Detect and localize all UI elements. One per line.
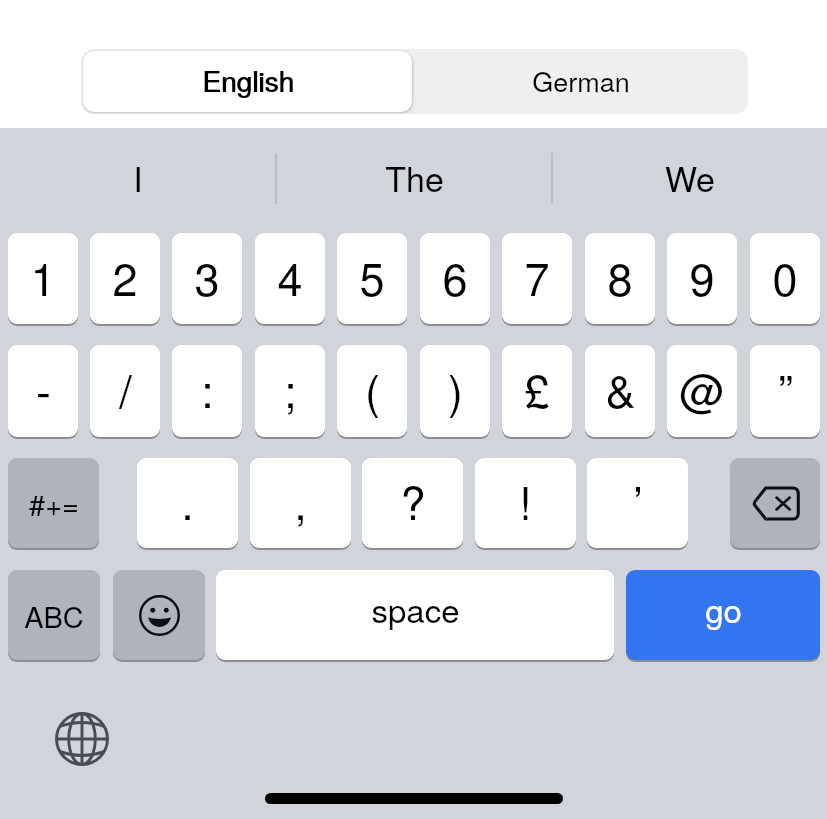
button[interactable]: , xyxy=(250,458,351,548)
button[interactable]: @ xyxy=(667,345,737,437)
staticText: 7 xyxy=(524,244,550,308)
button[interactable]: ’ xyxy=(587,458,688,548)
button[interactable]: #+= xyxy=(8,458,99,548)
staticText: 8 xyxy=(607,244,633,308)
button[interactable]: / xyxy=(90,345,160,437)
staticText: : xyxy=(201,356,214,420)
staticText: ’ xyxy=(633,468,643,532)
button[interactable]: 2 xyxy=(90,233,160,324)
button[interactable]: 3 xyxy=(172,233,242,324)
button[interactable]: space xyxy=(216,570,614,660)
staticText: 6 xyxy=(442,244,468,308)
staticText: 9 xyxy=(689,244,715,308)
staticText: 4 xyxy=(277,244,303,308)
button[interactable]: German xyxy=(414,49,748,114)
staticText: @ xyxy=(679,356,725,420)
staticText: 2 xyxy=(112,244,138,308)
button[interactable]: 0 xyxy=(750,233,820,324)
staticText: & xyxy=(605,356,636,420)
staticText: We xyxy=(665,153,715,202)
button[interactable]: Change keyboard language xyxy=(51,708,113,770)
button[interactable]: ( xyxy=(337,345,407,437)
button[interactable]: I xyxy=(0,128,275,218)
button[interactable]: 7 xyxy=(502,233,572,324)
staticText: 0 xyxy=(772,244,798,308)
button[interactable]: ! xyxy=(475,458,576,548)
button[interactable]: ABC xyxy=(8,570,100,660)
staticText: ” xyxy=(778,356,793,420)
button[interactable]: 9 xyxy=(667,233,737,324)
button[interactable]: ” xyxy=(750,345,820,437)
button[interactable]: go xyxy=(626,570,820,660)
staticText: ? xyxy=(400,468,426,532)
button[interactable]: English xyxy=(83,51,412,112)
staticText: ( xyxy=(365,356,380,420)
staticText: / xyxy=(119,356,132,420)
button[interactable]: ; xyxy=(255,345,325,437)
button[interactable]: ? xyxy=(362,458,463,548)
staticText: The xyxy=(385,153,444,202)
button[interactable]: - xyxy=(8,345,78,437)
staticText: , xyxy=(294,468,307,532)
staticText: go xyxy=(705,585,742,632)
button[interactable]: Backspace xyxy=(730,458,820,548)
button[interactable]: 5 xyxy=(337,233,407,324)
staticText: German xyxy=(532,61,630,100)
button[interactable]: . xyxy=(137,458,238,548)
staticText: 1 xyxy=(30,244,56,308)
staticText: 5 xyxy=(359,244,385,308)
staticText: I xyxy=(133,153,143,202)
button[interactable]: 4 xyxy=(255,233,325,324)
staticText: 3 xyxy=(194,244,220,308)
button[interactable]: & xyxy=(585,345,655,437)
button[interactable]: Emoji xyxy=(113,570,205,660)
staticText: . xyxy=(181,468,194,532)
button[interactable]: : xyxy=(172,345,242,437)
staticText: space xyxy=(371,585,460,632)
button[interactable]: 8 xyxy=(585,233,655,324)
button[interactable]: The xyxy=(277,128,551,218)
button[interactable]: 6 xyxy=(420,233,490,324)
staticText: English xyxy=(203,60,295,100)
staticText: ; xyxy=(284,356,297,420)
staticText: ! xyxy=(519,468,532,532)
staticText: English xyxy=(202,60,294,100)
button[interactable]: £ xyxy=(502,345,572,437)
staticText: ABC xyxy=(24,595,84,637)
staticText: £ xyxy=(524,356,550,420)
button[interactable]: We xyxy=(553,128,827,218)
button[interactable]: 1 xyxy=(8,233,78,324)
staticText: #+= xyxy=(29,483,79,525)
button[interactable]: ) xyxy=(420,345,490,437)
staticText: - xyxy=(36,356,51,420)
staticText: ) xyxy=(448,356,463,420)
